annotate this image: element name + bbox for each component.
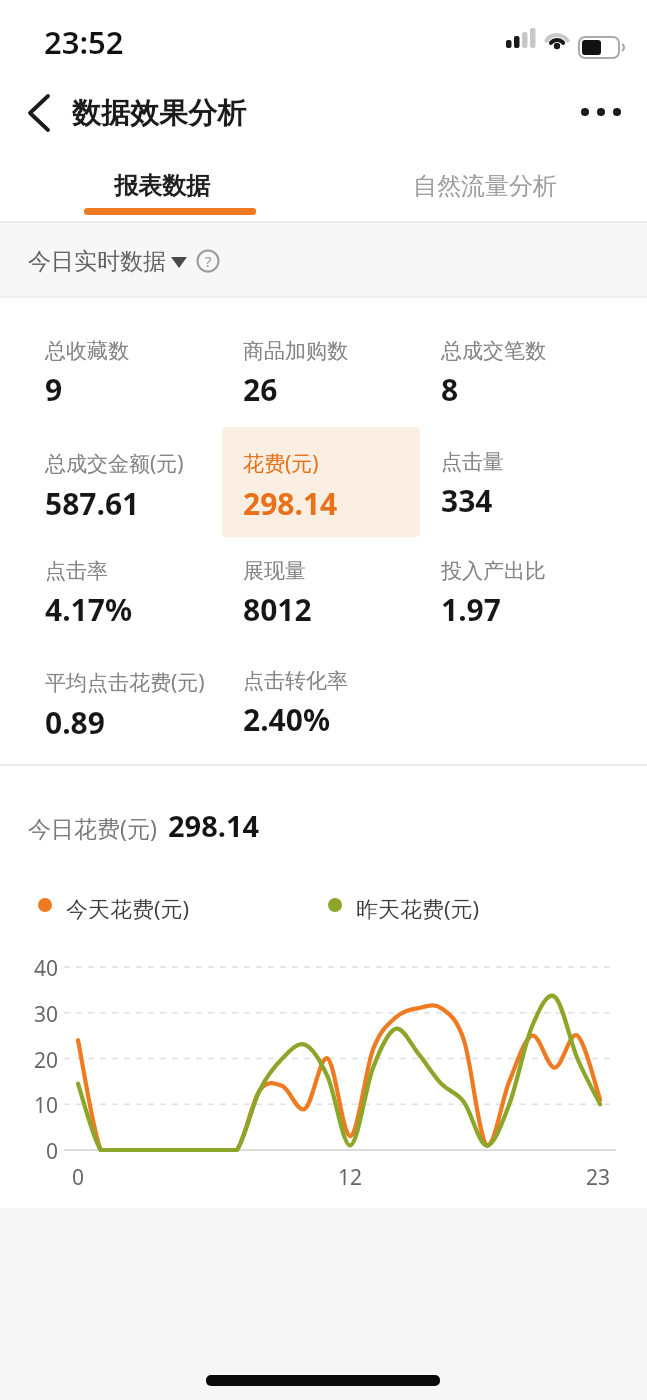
button[interactable]	[570, 90, 632, 134]
staticText: 数据效果分析	[72, 95, 246, 132]
staticText: 2.40%	[243, 699, 330, 740]
staticText: 总收藏数	[45, 338, 129, 364]
staticText: 23	[580, 1163, 616, 1192]
staticText: 今日实时数据	[28, 247, 166, 276]
staticText: 0.89	[45, 702, 105, 743]
staticText: 12	[332, 1163, 368, 1192]
staticText: 587.61	[45, 483, 140, 524]
staticText: 报表数据	[114, 171, 210, 201]
staticText: 总成交金额(元)	[45, 449, 184, 478]
staticText: 9	[45, 369, 63, 410]
staticText: 点击量	[441, 449, 504, 475]
staticText: 40	[20, 954, 58, 983]
staticText: 8012	[243, 589, 312, 630]
staticText: 点击率	[45, 558, 108, 584]
staticText: 1.97	[441, 589, 501, 630]
staticText: 今天花费(元)	[66, 893, 190, 923]
staticText: 334	[441, 480, 493, 521]
staticText: ?	[205, 251, 212, 271]
staticText: 昨天花费(元)	[356, 893, 480, 923]
staticText: 298.14	[168, 806, 260, 845]
staticText: 总成交笔数	[441, 338, 546, 364]
button[interactable]: 报表数据	[0, 150, 323, 222]
staticText: 0	[60, 1163, 96, 1192]
staticText: 20	[20, 1046, 58, 1075]
button[interactable]	[16, 226, 246, 296]
button[interactable]: 自然流量分析	[323, 150, 647, 222]
staticText: 自然流量分析	[413, 171, 557, 201]
staticText: 商品加购数	[243, 338, 348, 364]
staticText: 4.17%	[45, 589, 132, 630]
button[interactable]	[222, 427, 420, 537]
staticText: 今日花费(元)	[28, 812, 157, 843]
staticText: 0	[20, 1137, 58, 1166]
staticText: 26	[243, 369, 278, 410]
staticText: 8	[441, 369, 459, 410]
staticText: 平均点击花费(元)	[45, 668, 205, 697]
button[interactable]	[14, 86, 64, 140]
staticText: 10	[20, 1091, 58, 1120]
staticText: 展现量	[243, 558, 306, 584]
staticText: 23:52	[44, 21, 124, 63]
staticText: 30	[20, 1000, 58, 1029]
staticText: 点击转化率	[243, 668, 348, 694]
staticText: 投入产出比	[441, 558, 546, 584]
staticText: 298.14	[243, 483, 338, 524]
staticText: 花费(元)	[243, 449, 319, 478]
